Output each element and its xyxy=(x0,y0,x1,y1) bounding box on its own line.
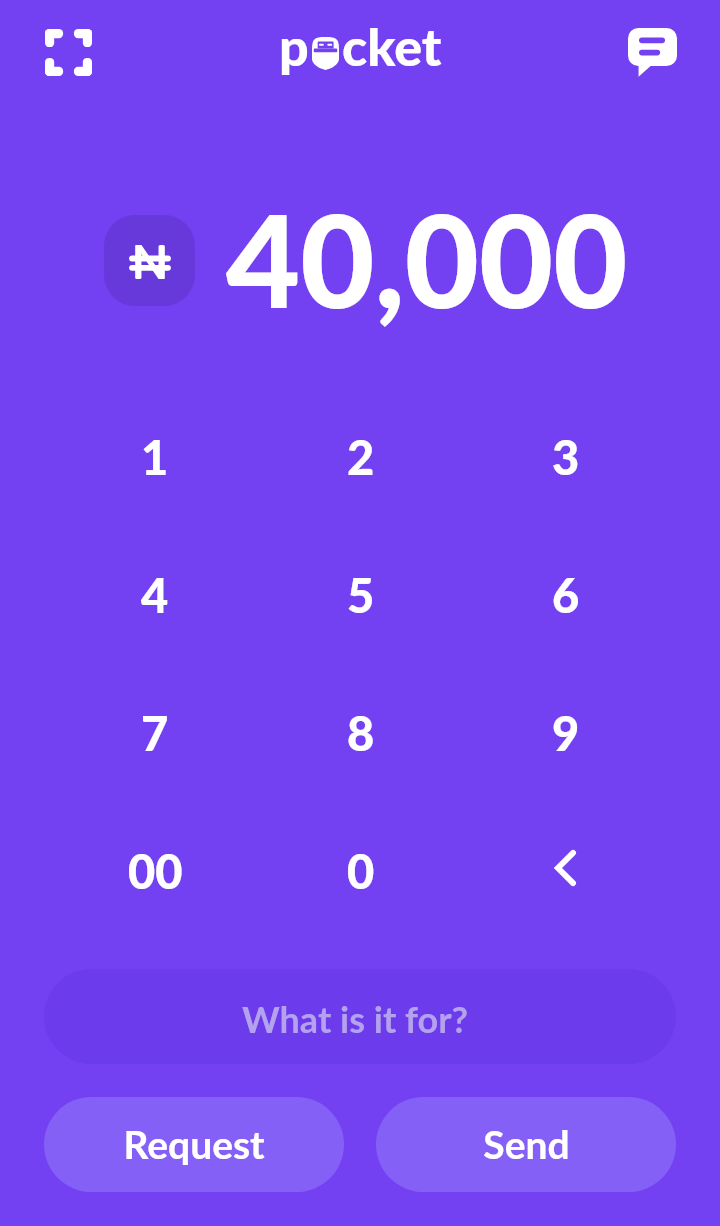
staticText: 7 xyxy=(141,705,169,761)
staticText: 9 xyxy=(552,705,580,761)
staticText: 4 xyxy=(141,567,169,623)
staticText: 00 xyxy=(128,843,183,899)
staticText: cket xyxy=(342,15,442,77)
button[interactable]: Request xyxy=(44,1097,344,1192)
button[interactable]: Scan code xyxy=(33,17,104,88)
button[interactable]: Delete xyxy=(463,802,668,940)
staticText: p xyxy=(279,15,309,77)
button[interactable]: 5 xyxy=(258,526,463,664)
staticText: 8 xyxy=(347,705,375,761)
staticText: 1 xyxy=(141,429,169,485)
button[interactable]: 2 xyxy=(258,388,463,526)
staticText: What is it for? xyxy=(242,997,469,1040)
button[interactable]: 0 xyxy=(258,802,463,940)
button[interactable]: 6 xyxy=(463,526,668,664)
staticText: 0 xyxy=(347,843,375,899)
staticText: 6 xyxy=(552,567,580,623)
button[interactable]: Messages xyxy=(615,15,689,89)
button[interactable]: 9 xyxy=(463,664,668,802)
staticText: 2 xyxy=(347,429,375,485)
staticText: 3 xyxy=(552,429,580,485)
staticText: 5 xyxy=(347,567,375,623)
button[interactable]: 1 xyxy=(52,388,258,526)
other: pocket xyxy=(279,15,442,77)
button[interactable]: 4 xyxy=(52,526,258,664)
staticText: Send xyxy=(483,1121,570,1168)
button[interactable]: 7 xyxy=(52,664,258,802)
button[interactable]: 8 xyxy=(258,664,463,802)
button[interactable]: 00 xyxy=(52,802,258,940)
button[interactable]: What is it for? xyxy=(44,969,676,1064)
staticText: Request xyxy=(123,1121,265,1168)
button[interactable]: 3 xyxy=(463,388,668,526)
staticText: 40,000 xyxy=(226,182,628,336)
button[interactable]: Send xyxy=(376,1097,676,1192)
